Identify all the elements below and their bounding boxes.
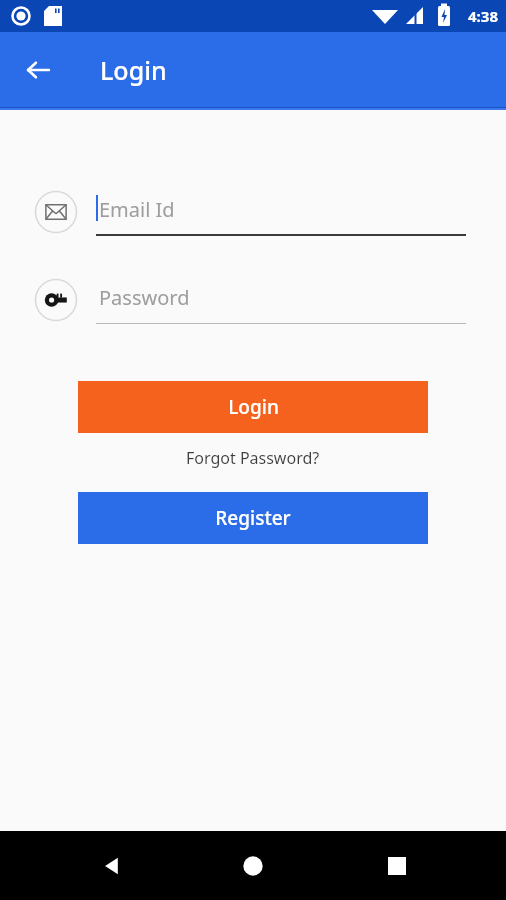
staticText: 4:38 <box>468 6 498 26</box>
staticText: Password <box>99 284 190 311</box>
button[interactable]: Email <box>34 190 78 234</box>
staticText: Forgot Password? <box>186 447 320 469</box>
button[interactable]: Login <box>78 381 428 433</box>
button[interactable]: Email Id <box>96 188 466 236</box>
button[interactable]: Password <box>34 278 78 322</box>
button[interactable]: Register <box>78 492 428 544</box>
button[interactable]: Back <box>88 841 138 891</box>
staticText: Login <box>228 394 279 420</box>
button[interactable]: Forgot Password? <box>0 447 506 469</box>
staticText: Login <box>100 53 167 87</box>
staticText: Email Id <box>99 196 175 223</box>
button[interactable]: Password <box>96 276 466 324</box>
staticText: Register <box>215 505 291 531</box>
button[interactable]: Back <box>14 46 62 94</box>
button[interactable]: Recents <box>372 841 422 891</box>
button[interactable]: Home <box>228 841 278 891</box>
